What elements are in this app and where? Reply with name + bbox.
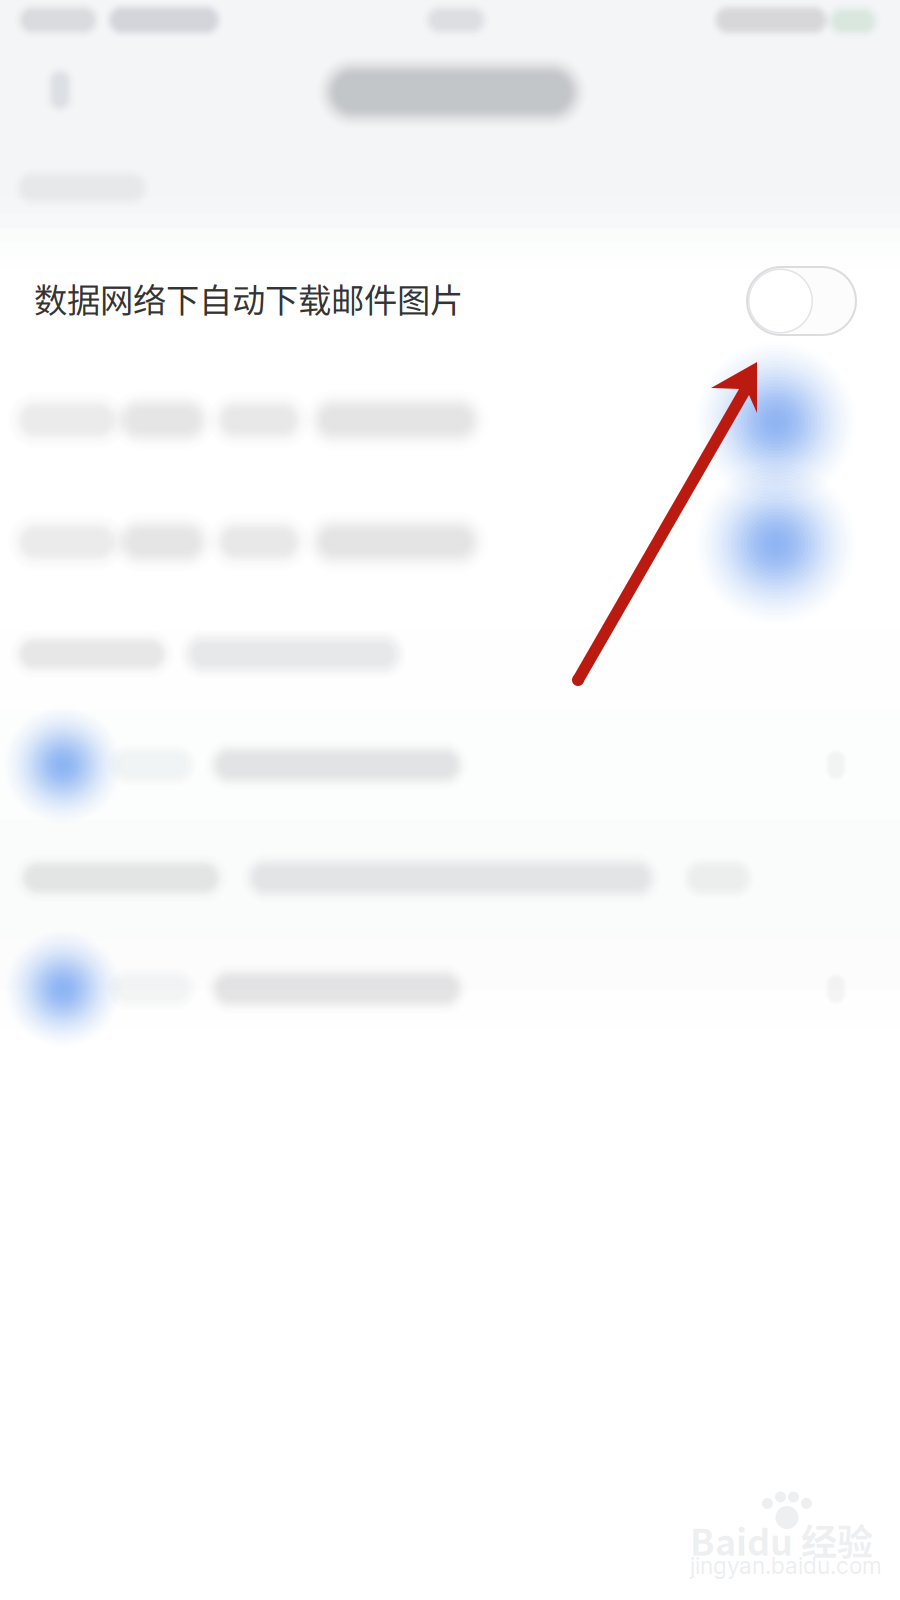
button[interactable]: Back: [0, 0, 150, 150]
button[interactable]: 数据网络下自动下载邮件图片: [0, 237, 900, 359]
staticText: jingyan.baidu.com: [690, 1552, 882, 1579]
staticText: 数据网络下自动下载邮件图片: [34, 274, 463, 322]
staticText: Baidu 经验: [690, 1514, 873, 1566]
